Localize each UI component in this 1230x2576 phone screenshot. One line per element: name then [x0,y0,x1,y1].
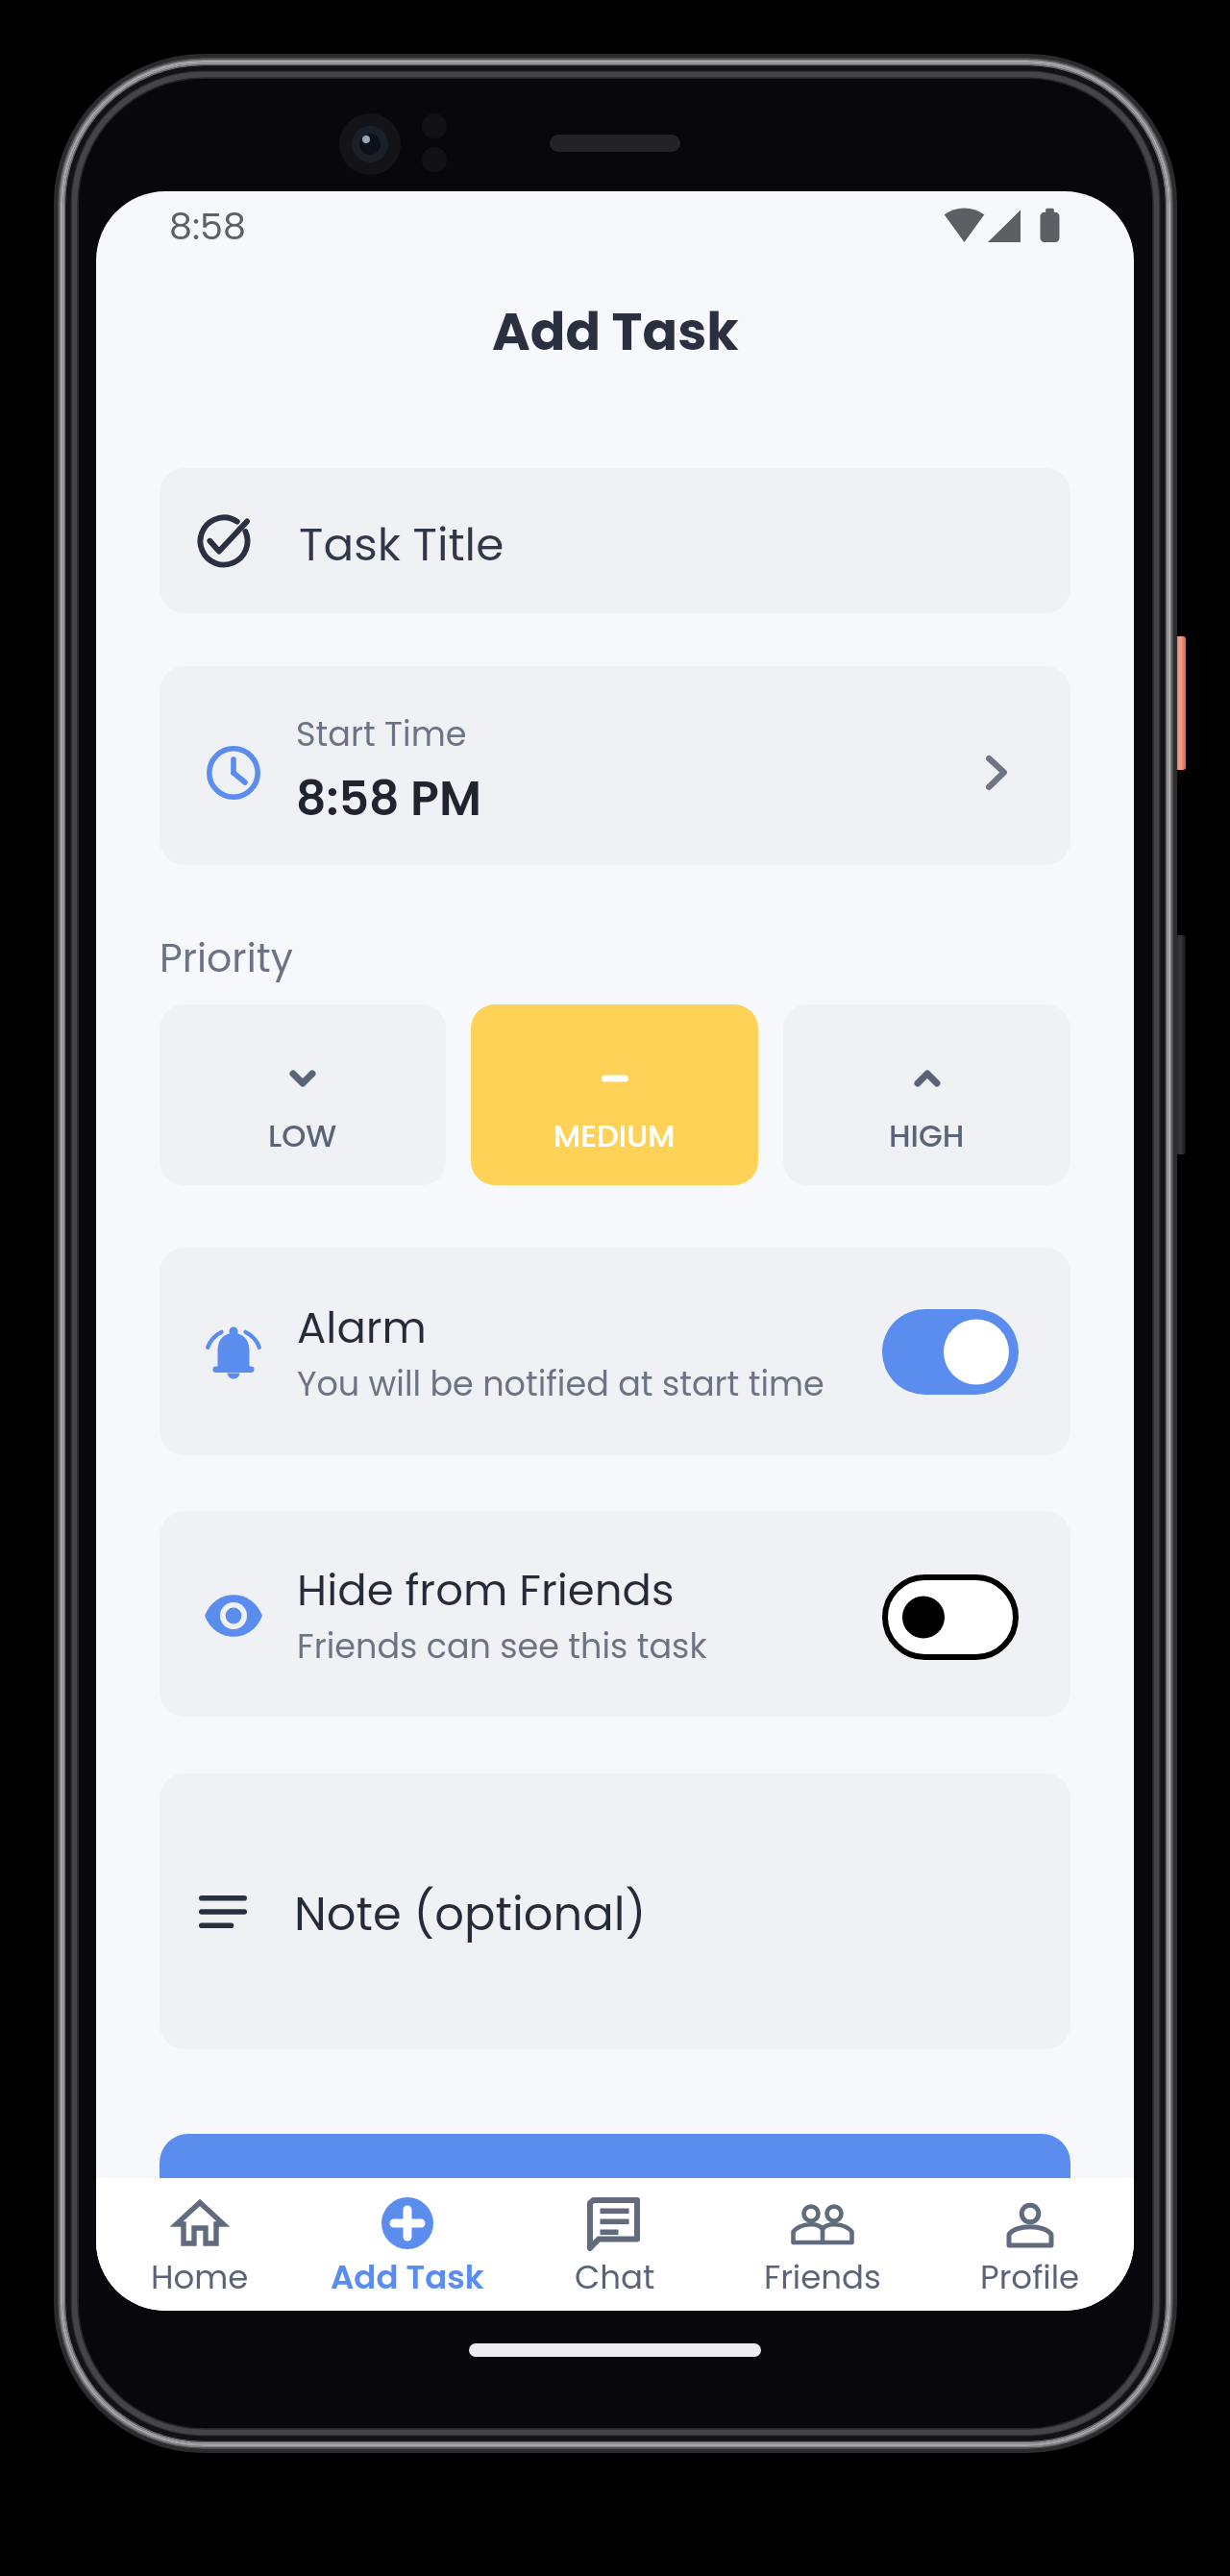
staticText: Home [151,2254,249,2300]
staticText: Profile [980,2254,1080,2300]
button[interactable]: Chat [511,2178,719,2311]
button[interactable]: Alarm [160,1248,1070,1455]
staticText: Hide from Friends [297,1560,675,1621]
button[interactable]: Task Title [160,468,1070,613]
staticText: Note (optional) [294,1882,647,1946]
other: Choose start time [986,755,1007,790]
button[interactable]: Hide from Friends [160,1511,1070,1717]
button[interactable]: Friends [719,2178,926,2311]
button[interactable]: Profile [926,2178,1134,2311]
button[interactable]: Home [96,2178,304,2311]
staticText: You will be notified at start time [297,1360,824,1407]
button[interactable]: Note (optional) [160,1773,1070,2049]
staticText: Start Time [296,710,467,757]
staticText: HIGH [889,1114,965,1157]
staticText: 8:58 PM [296,766,481,832]
staticText: Add Task [331,2254,484,2300]
button[interactable]: LOW [160,1004,446,1185]
staticText: Friends can see this task [297,1622,707,1670]
staticText: Chat [575,2254,655,2300]
button[interactable]: Hide from Friends switch [882,1574,1019,1660]
staticText: MEDIUM [553,1114,676,1157]
button[interactable]: MEDIUM [471,1004,758,1185]
button[interactable]: Start Time [160,666,1070,865]
staticText: Priority [160,930,293,985]
staticText: 8:58 [169,201,246,252]
button[interactable]: Add Task [304,2178,511,2311]
staticText: Task Title [299,513,504,577]
staticText: Friends [764,2254,881,2300]
button[interactable]: Save Task [160,2134,1070,2259]
button[interactable]: Alarm switch [882,1309,1019,1395]
button[interactable]: HIGH [783,1004,1070,1185]
staticText: Save Task [502,2166,728,2227]
staticText: LOW [268,1114,337,1157]
staticText: Alarm [297,1298,427,1358]
staticText: Add Task [492,295,739,368]
